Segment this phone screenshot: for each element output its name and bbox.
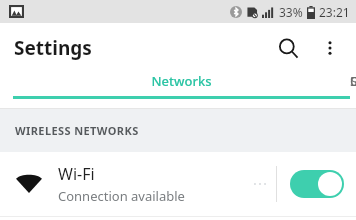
staticText: Networks [151, 72, 212, 90]
staticText: 33% [279, 4, 303, 20]
staticText: Connection available [58, 187, 185, 205]
button[interactable]: Networks [13, 72, 350, 99]
staticText: 23:21 [319, 4, 350, 20]
button[interactable]: Wi-Fi toggle [290, 162, 356, 206]
staticText: Wi-Fi [58, 163, 95, 185]
button[interactable]: More options [310, 28, 350, 68]
staticText: WIRELESS NETWORKS [15, 123, 139, 138]
staticText: Settings [14, 35, 92, 61]
button[interactable]: Search [266, 26, 310, 70]
button[interactable]: Wi-Fi [0, 152, 356, 216]
